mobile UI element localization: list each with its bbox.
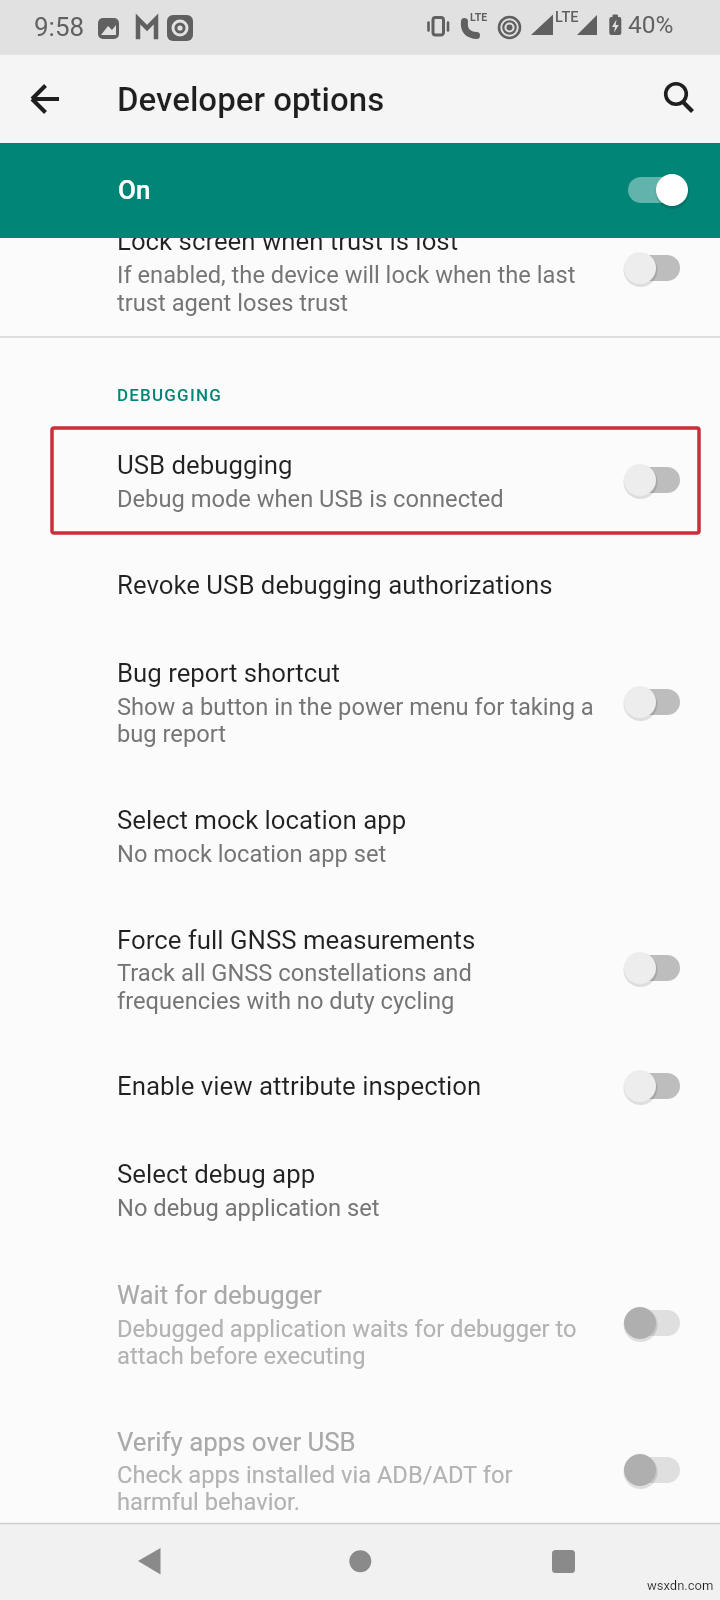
button[interactable]: Bug report shortcut	[0, 635, 720, 775]
staticText: Debugged application waits for debugger …	[117, 1315, 577, 1343]
staticText: harmful behavior.	[117, 1488, 300, 1516]
staticText: attach before executing	[117, 1342, 366, 1370]
staticText: frequencies with no duty cycling	[117, 987, 455, 1015]
button[interactable]: Enable view attribute inspection	[0, 1046, 720, 1128]
staticText: Track all GNSS constellations and	[117, 959, 472, 987]
staticText: DEBUGGING	[117, 385, 222, 405]
staticText: Show a button in the power menu for taki…	[117, 693, 594, 721]
staticText: On	[118, 175, 151, 205]
staticText: Wait for debugger	[117, 1280, 322, 1310]
staticText: LTE	[555, 9, 579, 26]
button[interactable]	[119, 1531, 179, 1591]
staticText: Select debug app	[117, 1159, 316, 1189]
staticText: USB debugging	[117, 450, 293, 480]
button[interactable]	[648, 66, 704, 122]
button[interactable]	[330, 1531, 390, 1591]
staticText: 9:58	[34, 12, 85, 42]
staticText: Force full GNSS measurements	[117, 925, 476, 955]
staticText: Developer options	[117, 80, 385, 119]
staticText: Check apps installed via ADB/ADT for	[117, 1461, 513, 1489]
button[interactable]: Wait for debugger	[0, 1257, 720, 1394]
staticText: Lock screen when trust is lost	[117, 226, 459, 256]
button[interactable]: Lock screen when trust is lost	[0, 190, 720, 337]
button[interactable]: Revoke USB debugging authorizations	[0, 545, 720, 627]
staticText: Select mock location app	[117, 805, 407, 835]
staticText: trust agent loses trust	[117, 289, 349, 317]
staticText: 40%	[628, 10, 674, 39]
staticText: Debug mode when USB is connected	[117, 485, 504, 513]
button[interactable]: USB debugging	[0, 428, 720, 533]
button[interactable]	[16, 71, 72, 127]
button[interactable]: On	[0, 143, 720, 238]
staticText: Enable view attribute inspection	[117, 1071, 482, 1101]
staticText: Revoke USB debugging authorizations	[117, 570, 553, 600]
staticText: If enabled, the device will lock when th…	[117, 261, 576, 289]
staticText: No debug application set	[117, 1194, 380, 1222]
staticText: Verify apps over USB	[117, 1427, 356, 1457]
staticText: Bug report shortcut	[117, 658, 340, 688]
button[interactable]: Select mock location app	[0, 782, 720, 892]
staticText: wsxdn.com	[647, 1578, 714, 1593]
button[interactable]	[533, 1531, 593, 1591]
staticText: LTE	[470, 11, 488, 23]
button[interactable]: Select debug app	[0, 1136, 720, 1246]
button[interactable]: Verify apps over USB	[0, 1404, 720, 1523]
staticText: No mock location app set	[117, 840, 387, 868]
staticText: bug report	[117, 720, 227, 748]
button[interactable]: Force full GNSS measurements	[0, 902, 720, 1039]
